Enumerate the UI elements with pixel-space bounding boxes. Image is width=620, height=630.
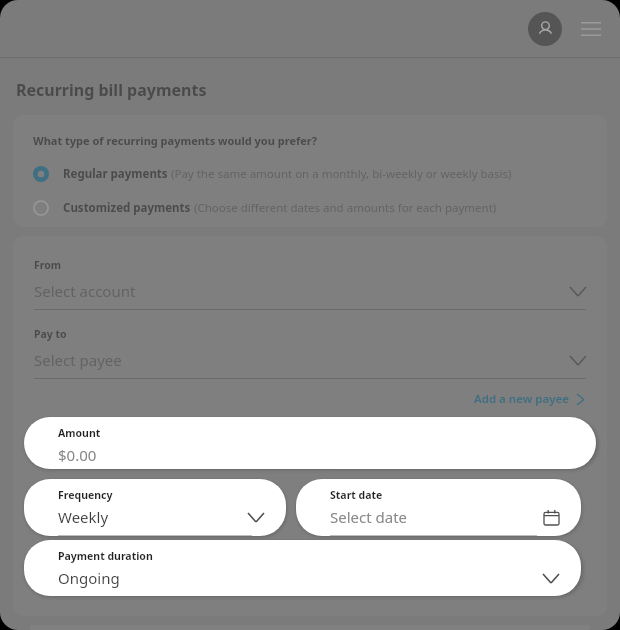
- staticText: Ongoing: [58, 568, 543, 588]
- button[interactable]: From: [34, 258, 586, 310]
- staticText: Recurring bill payments: [16, 79, 207, 101]
- staticText: Start date: [330, 488, 383, 502]
- button[interactable]: Pay to: [34, 327, 586, 379]
- button[interactable]: Profile: [528, 12, 562, 46]
- staticText: From: [34, 258, 62, 272]
- staticText: Frequency: [58, 488, 113, 502]
- staticText: Customized payments: [63, 200, 191, 216]
- button[interactable]: Start date: [296, 479, 581, 536]
- button[interactable]: Add a new payee: [472, 387, 586, 411]
- staticText: (Choose different dates and amounts for …: [191, 200, 497, 216]
- staticText: Regular payments: [63, 166, 168, 182]
- button[interactable]: Amount: [24, 417, 596, 469]
- button[interactable]: Payment duration: [24, 540, 581, 596]
- button[interactable]: Frequency: [24, 479, 286, 536]
- staticText: What type of recurring payments would yo…: [33, 133, 317, 148]
- staticText: Select payee: [34, 350, 570, 370]
- staticText: (Pay the same amount on a monthly, bi-we…: [168, 166, 512, 182]
- staticText: $0.00: [58, 445, 574, 465]
- button[interactable]: Menu: [576, 14, 606, 44]
- button[interactable]: Customized payments: [33, 198, 591, 218]
- staticText: Select account: [34, 281, 570, 301]
- button[interactable]: Regular payments: [33, 164, 591, 184]
- staticText: Select date: [330, 507, 544, 527]
- staticText: Weekly: [58, 507, 248, 527]
- staticText: Pay to: [34, 327, 67, 341]
- staticText: Add a new payee: [474, 391, 569, 407]
- staticText: Payment duration: [58, 549, 153, 563]
- staticText: Amount: [58, 426, 101, 440]
